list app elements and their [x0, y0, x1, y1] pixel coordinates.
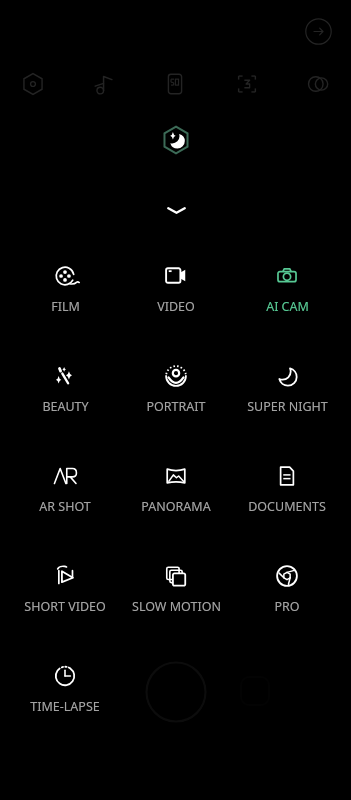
button[interactable]: BEAUTY — [11, 365, 119, 415]
button[interactable]: SHORT VIDEO — [11, 565, 119, 615]
staticText: PORTRAIT — [146, 398, 206, 415]
button[interactable]: FILM — [11, 265, 119, 315]
button[interactable]: Night scene — [160, 124, 192, 156]
button[interactable]: AR SHOT — [11, 465, 119, 515]
staticText: FILM — [51, 298, 80, 315]
button[interactable]: Music — [87, 67, 121, 101]
button[interactable]: Collapse modes — [154, 198, 198, 223]
staticText: AI CAM — [266, 298, 309, 315]
staticText: BEAUTY — [42, 398, 89, 415]
button[interactable]: SLOW MOTION — [122, 565, 230, 615]
button[interactable]: TIME-LAPSE — [11, 665, 119, 715]
staticText: PRO — [274, 598, 300, 615]
button[interactable]: VIDEO — [122, 265, 230, 315]
button[interactable]: Shutter — [145, 661, 207, 723]
staticText: TIME-LAPSE — [30, 698, 100, 715]
button[interactable]: SUPER NIGHT — [233, 365, 341, 415]
button[interactable]: Aspect ratio — [230, 67, 264, 101]
staticText: SUPER NIGHT — [247, 398, 328, 415]
button[interactable]: DOCUMENTS — [233, 465, 341, 515]
staticText: SHORT VIDEO — [24, 598, 106, 615]
staticText: PANORAMA — [141, 498, 211, 515]
button[interactable]: Switch camera — [303, 16, 334, 47]
button[interactable]: AI CAM — [233, 265, 341, 315]
staticText: AR SHOT — [39, 498, 91, 515]
button[interactable]: Resolution — [158, 67, 192, 101]
button[interactable]: PRO — [233, 565, 341, 615]
button[interactable]: Beauty mode — [16, 67, 50, 101]
staticText: VIDEO — [157, 298, 195, 315]
button[interactable]: PANORAMA — [122, 465, 230, 515]
button[interactable]: PORTRAIT — [122, 365, 230, 415]
staticText: DOCUMENTS — [248, 498, 326, 515]
staticText: SLOW MOTION — [132, 598, 221, 615]
button[interactable]: Filters — [301, 67, 335, 101]
